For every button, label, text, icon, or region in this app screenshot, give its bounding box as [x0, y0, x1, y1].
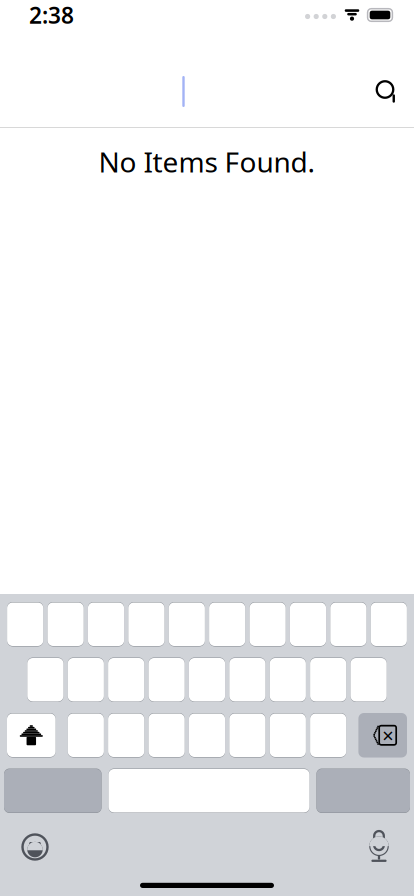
button[interactable]: P	[371, 602, 407, 646]
button[interactable]: E	[88, 602, 124, 646]
button[interactable]: Z	[68, 713, 104, 757]
button[interactable]: Y	[209, 602, 245, 646]
button[interactable]: L	[350, 657, 387, 702]
button[interactable]: 123	[4, 768, 102, 813]
button[interactable]: X	[108, 713, 144, 757]
button[interactable]: S	[68, 657, 104, 702]
button[interactable]: D	[108, 657, 144, 702]
button[interactable]: C	[148, 713, 185, 757]
button[interactable]: H	[229, 657, 265, 702]
button[interactable]: A	[27, 657, 63, 702]
button[interactable]: G	[189, 657, 225, 702]
button[interactable]: Delete	[358, 713, 407, 757]
button[interactable]: K	[310, 657, 346, 702]
staticText: ×	[382, 722, 393, 749]
button[interactable]: M	[310, 713, 346, 757]
button[interactable]: Q	[7, 602, 43, 646]
button[interactable]: B	[229, 713, 265, 757]
staticText: No Items Found.	[98, 143, 315, 180]
button[interactable]: R	[128, 602, 164, 646]
button[interactable]: I	[290, 602, 326, 646]
button[interactable]: N	[270, 713, 306, 757]
button[interactable]: Dictation	[353, 825, 405, 869]
button[interactable]: F	[148, 657, 185, 702]
button[interactable]: space	[108, 768, 309, 813]
button[interactable]: T	[169, 602, 205, 646]
button[interactable]: return	[316, 768, 410, 813]
button[interactable]: Emoji	[9, 825, 61, 869]
button[interactable]: V	[189, 713, 225, 757]
button[interactable]: Search	[367, 69, 414, 113]
button[interactable]: W	[47, 602, 84, 646]
button[interactable]: U	[249, 602, 286, 646]
button[interactable]: Shift	[7, 713, 56, 757]
button[interactable]: O	[330, 602, 366, 646]
staticText: 2:38	[29, 0, 74, 30]
button[interactable]: J	[270, 657, 306, 702]
